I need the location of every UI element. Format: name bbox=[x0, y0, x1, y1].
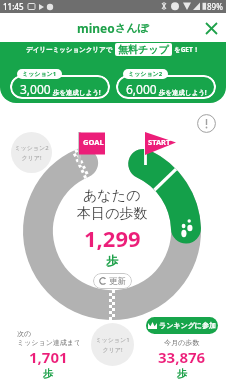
staticText: 今月の歩数 bbox=[164, 338, 200, 347]
staticText: さんぽ bbox=[115, 21, 149, 35]
staticText: 歩 bbox=[177, 367, 187, 380]
staticText: ランキングに参加 bbox=[159, 321, 216, 330]
staticText: デイリーミッションクリアで bbox=[26, 46, 113, 54]
staticText: 無料チップ bbox=[118, 43, 169, 56]
staticText: 歩 bbox=[43, 367, 53, 380]
staticText: 本日の歩数 bbox=[77, 205, 148, 223]
staticText: ミッション1 クリア! bbox=[95, 336, 130, 354]
staticText: 次の bbox=[17, 329, 32, 338]
staticText: ミッション1 bbox=[22, 70, 57, 78]
staticText: 11:45 bbox=[3, 1, 24, 12]
button[interactable]: デイリーミッションクリアで bbox=[0, 42, 226, 57]
button[interactable]: ランキングに参加 bbox=[146, 317, 218, 334]
staticText: 33,876 bbox=[158, 347, 206, 367]
button[interactable]: 更新 bbox=[93, 273, 132, 289]
staticText: 6,000 bbox=[126, 81, 157, 97]
staticText: mineo bbox=[77, 20, 115, 36]
staticText: 歩を達成しよう! bbox=[51, 88, 101, 97]
staticText: あなたの bbox=[83, 187, 141, 205]
staticText: 更新 bbox=[109, 276, 126, 287]
staticText: ミッション達成まで bbox=[17, 338, 79, 347]
staticText: 歩 bbox=[106, 253, 118, 268]
staticText: をGET！ bbox=[174, 45, 200, 54]
staticText: ミッション2 クリア! bbox=[14, 144, 49, 162]
button[interactable]: 6,000 bbox=[116, 75, 216, 99]
staticText: GOAL bbox=[83, 137, 104, 147]
button[interactable]: 3,000 bbox=[10, 75, 110, 99]
button[interactable]: Close bbox=[202, 19, 220, 37]
staticText: START bbox=[148, 137, 171, 147]
staticText: 1,299 bbox=[84, 223, 141, 253]
staticText: ミッション2 bbox=[128, 70, 163, 78]
staticText: 歩を達成しよう! bbox=[157, 88, 207, 97]
staticText: 3,000 bbox=[20, 81, 51, 97]
staticText: 1,701 bbox=[29, 347, 68, 367]
button[interactable]: Info bbox=[195, 112, 217, 134]
staticText: 89% bbox=[207, 1, 223, 12]
